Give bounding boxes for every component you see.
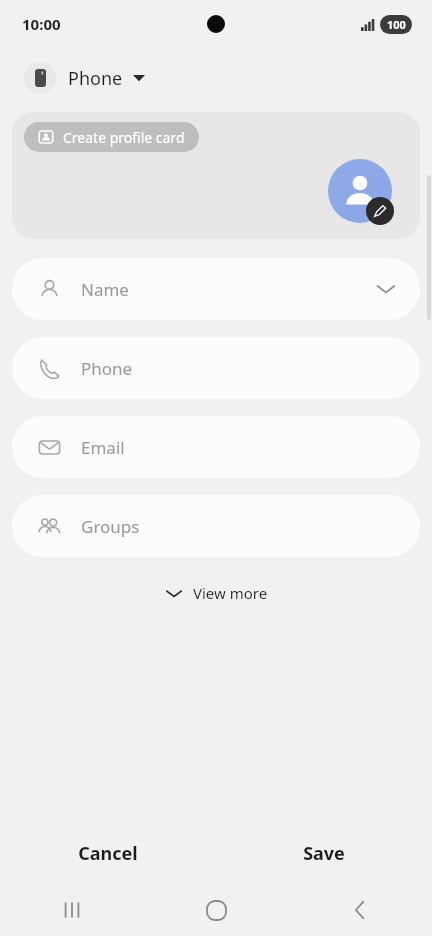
button[interactable]: Name — [12, 258, 420, 320]
staticText: Phone — [81, 357, 133, 380]
staticText: View more — [193, 583, 268, 603]
staticText: Cancel — [78, 841, 138, 866]
button[interactable]: Phone — [12, 337, 420, 399]
button[interactable]: Edit profile photo — [328, 159, 394, 225]
button[interactable]: Home — [144, 884, 288, 936]
button[interactable]: Create profile card — [24, 122, 199, 152]
staticText: 10:00 — [22, 14, 61, 34]
staticText: Groups — [81, 515, 140, 538]
staticText: Save — [303, 841, 345, 866]
staticText: Create profile card — [63, 128, 185, 147]
button[interactable]: Groups — [12, 495, 420, 557]
button[interactable]: View more — [149, 575, 284, 611]
staticText: Phone — [68, 66, 123, 91]
button[interactable]: Cancel — [0, 822, 216, 884]
button[interactable]: Email — [12, 416, 420, 478]
staticText: 100 — [387, 17, 406, 32]
button[interactable]: Phone — [20, 56, 149, 100]
staticText: Email — [81, 436, 125, 459]
button[interactable]: Recent apps — [0, 884, 144, 936]
button[interactable]: Save — [216, 822, 432, 884]
staticText: Name — [81, 278, 129, 301]
button[interactable]: Back — [288, 884, 432, 936]
